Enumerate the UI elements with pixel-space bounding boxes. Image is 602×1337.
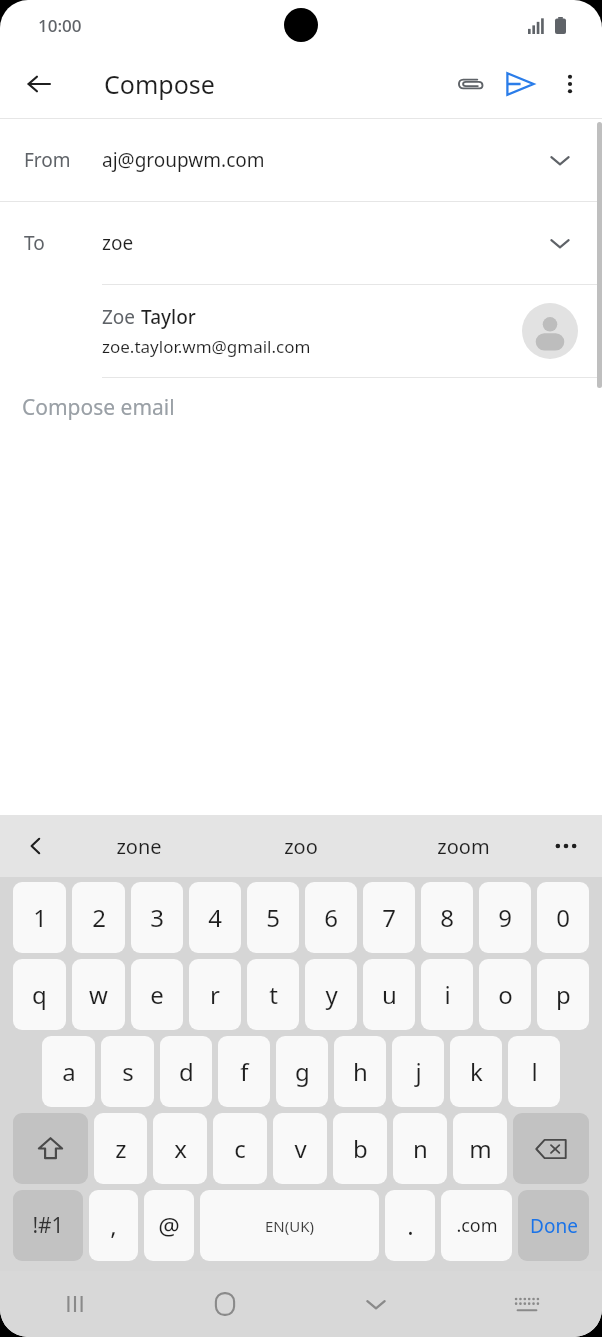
button[interactable]: 6 [305,882,357,953]
staticText: , [110,1209,117,1242]
staticText: d [179,1055,194,1088]
button[interactable]: 1 [13,882,66,953]
button[interactable]: c [213,1113,267,1184]
button[interactable]: Back [14,59,64,109]
button[interactable]: Backspace [513,1113,589,1184]
button[interactable]: i [421,959,473,1030]
button[interactable]: d [160,1036,212,1107]
button[interactable]: More options [546,60,594,108]
button[interactable]: t [247,959,299,1030]
button[interactable]: 5 [247,882,299,953]
button[interactable]: @ [144,1190,194,1261]
staticText: w [89,978,108,1011]
button[interactable]: Home [150,1271,300,1337]
staticText: p [556,978,571,1011]
button[interactable]: l [508,1036,560,1107]
button[interactable]: . [385,1190,435,1261]
staticText: u [382,978,397,1011]
staticText: x [174,1132,187,1165]
staticText: To [24,230,102,256]
button[interactable]: !#1 [13,1190,83,1261]
staticText: 9 [498,901,512,934]
staticText: j [415,1055,422,1088]
staticText: 8 [440,901,454,934]
button[interactable]: Compose email [0,378,602,436]
staticText: 2 [92,901,106,934]
staticText: @ [158,1209,180,1242]
button[interactable]: EN(UK) [200,1190,379,1261]
button[interactable]: h [334,1036,386,1107]
button[interactable]: More suggestions [544,824,588,868]
staticText: v [294,1132,307,1165]
button[interactable]: w [72,959,125,1030]
staticText: k [470,1055,483,1088]
staticText: 3 [150,901,164,934]
staticText: i [444,978,451,1011]
button[interactable]: zoom [382,815,544,877]
button[interactable]: y [305,959,357,1030]
button[interactable]: e [131,959,183,1030]
button[interactable]: m [453,1113,507,1184]
button[interactable]: Send [494,58,546,110]
staticText: Compose email [22,393,175,422]
button[interactable]: g [276,1036,328,1107]
staticText: 0 [556,901,570,934]
button[interactable]: x [153,1113,207,1184]
staticText: b [353,1132,368,1165]
button[interactable]: z [94,1113,147,1184]
button[interactable]: q [13,959,66,1030]
button[interactable]: 3 [131,882,183,953]
button[interactable]: Zoe [0,285,602,377]
button[interactable]: Recent apps [0,1271,150,1337]
staticText: . [407,1209,414,1242]
staticText: a [62,1055,76,1088]
button[interactable]: a [42,1036,95,1107]
button[interactable]: Done [518,1190,589,1261]
staticText: !#1 [32,1211,64,1240]
staticText: Done [530,1213,578,1239]
staticText: zoe [102,230,134,256]
staticText: zoo [284,833,318,860]
staticText: o [498,978,513,1011]
button[interactable]: r [189,959,241,1030]
button[interactable]: zone [58,815,220,877]
button[interactable]: f [218,1036,270,1107]
button[interactable]: 0 [537,882,589,953]
staticText: s [122,1055,134,1088]
button[interactable]: Hide keyboard [300,1271,451,1337]
button[interactable]: 8 [421,882,473,953]
staticText: aj@groupwm.com [102,147,265,173]
button[interactable]: Previous suggestions [14,824,58,868]
staticText: 7 [382,901,396,934]
button[interactable]: Switch keyboard [451,1271,602,1337]
button[interactable]: s [101,1036,154,1107]
button[interactable]: To [0,202,602,284]
staticText: f [240,1055,249,1088]
staticText: q [32,978,47,1011]
staticText: From [24,147,102,173]
button[interactable]: 7 [363,882,415,953]
button[interactable]: b [333,1113,387,1184]
staticText: y [325,978,338,1011]
button[interactable]: j [392,1036,444,1107]
staticText: Compose [104,67,215,101]
button[interactable]: v [273,1113,327,1184]
staticText: m [469,1132,492,1165]
button[interactable]: 2 [72,882,125,953]
button[interactable]: From [0,119,602,201]
button[interactable]: .com [441,1190,512,1261]
button[interactable]: , [89,1190,138,1261]
staticText: Zoe [102,304,141,330]
button[interactable]: 4 [189,882,241,953]
button[interactable]: p [537,959,589,1030]
button[interactable]: zoo [220,815,382,877]
button[interactable]: k [450,1036,502,1107]
staticText: z [115,1132,127,1165]
button[interactable]: o [479,959,531,1030]
button[interactable]: Attach file [446,60,494,108]
button[interactable]: 9 [479,882,531,953]
button[interactable]: n [393,1113,447,1184]
staticText: 10:00 [38,14,82,37]
button[interactable]: u [363,959,415,1030]
button[interactable]: Shift [13,1113,88,1184]
